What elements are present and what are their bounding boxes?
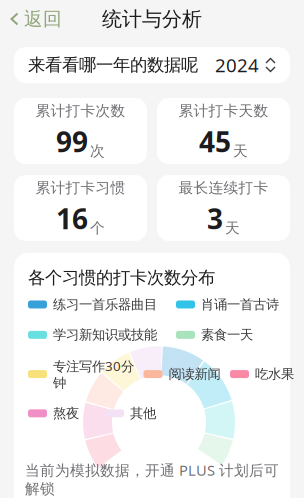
staticText: 天 <box>225 219 240 237</box>
staticText: 累计打卡习惯 <box>35 179 125 197</box>
staticText: 次 <box>90 142 105 160</box>
staticText: 个 <box>90 219 105 237</box>
staticText: 素食一天 <box>201 327 253 343</box>
staticText: 其他 <box>130 405 156 421</box>
staticText: 返回 <box>24 7 62 30</box>
staticText: 统计与分析 <box>102 7 202 31</box>
staticText: 45 <box>199 123 231 160</box>
staticText: 16 <box>56 200 88 237</box>
staticText: 天 <box>233 142 248 160</box>
staticText: 累计打卡次数 <box>35 102 125 120</box>
staticText: 最长连续打卡 <box>178 179 268 197</box>
staticText: 99 <box>56 123 88 160</box>
button[interactable]: 返回 <box>0 1 62 36</box>
staticText: 来看看哪一年的数据呢 <box>28 54 198 76</box>
staticText: 学习新知识或技能 <box>53 327 157 343</box>
staticText: 当前为模拟数据，开通 PLUS 计划后可解锁 <box>25 460 279 498</box>
staticText: 熬夜 <box>53 405 79 421</box>
staticText: 累计打卡天数 <box>178 102 268 120</box>
staticText: 3 <box>207 200 223 237</box>
staticText: 2024 <box>215 53 259 77</box>
staticText: 练习一首乐器曲目 <box>53 296 157 313</box>
button[interactable]: 累计打卡次数 <box>14 98 147 164</box>
staticText: 各个习惯的打卡次数分布 <box>28 267 215 288</box>
staticText: 专注写作30分钟 <box>53 357 134 391</box>
staticText: 阅读新闻 <box>168 366 220 382</box>
button[interactable]: 累计打卡习惯 <box>14 175 147 241</box>
staticText: 吃水果 <box>255 366 294 382</box>
staticText: 肖诵一首古诗 <box>201 296 279 313</box>
button[interactable]: 累计打卡天数 <box>157 98 290 164</box>
button[interactable]: 最长连续打卡 <box>157 175 290 241</box>
button[interactable]: 来看看哪一年的数据呢 <box>14 47 290 83</box>
